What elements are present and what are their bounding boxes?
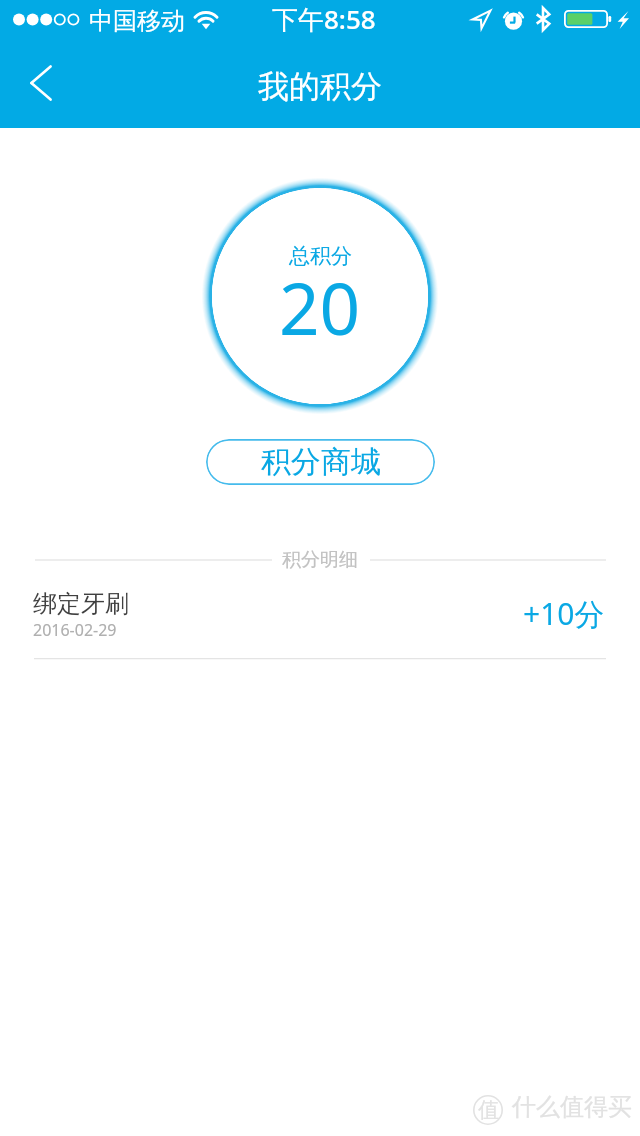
staticText: 绑定牙刷	[33, 589, 129, 619]
button[interactable]: Back	[10, 48, 72, 118]
staticText: 总积分	[289, 243, 352, 269]
staticText: 积分商城	[261, 443, 381, 481]
staticText: 什么值得买	[512, 1092, 632, 1122]
staticText: +10分	[523, 593, 605, 634]
staticText: 我的积分	[258, 67, 382, 106]
button[interactable]: 积分商城	[206, 439, 435, 485]
staticText: 下午8:58	[272, 1, 376, 37]
button[interactable]: 绑定牙刷	[0, 580, 640, 659]
staticText: 2016-02-29	[33, 619, 117, 641]
staticText: 中国移动	[89, 6, 185, 36]
staticText: 20	[279, 259, 361, 356]
staticText: 值	[478, 1097, 499, 1123]
staticText: 积分明细	[282, 548, 358, 572]
